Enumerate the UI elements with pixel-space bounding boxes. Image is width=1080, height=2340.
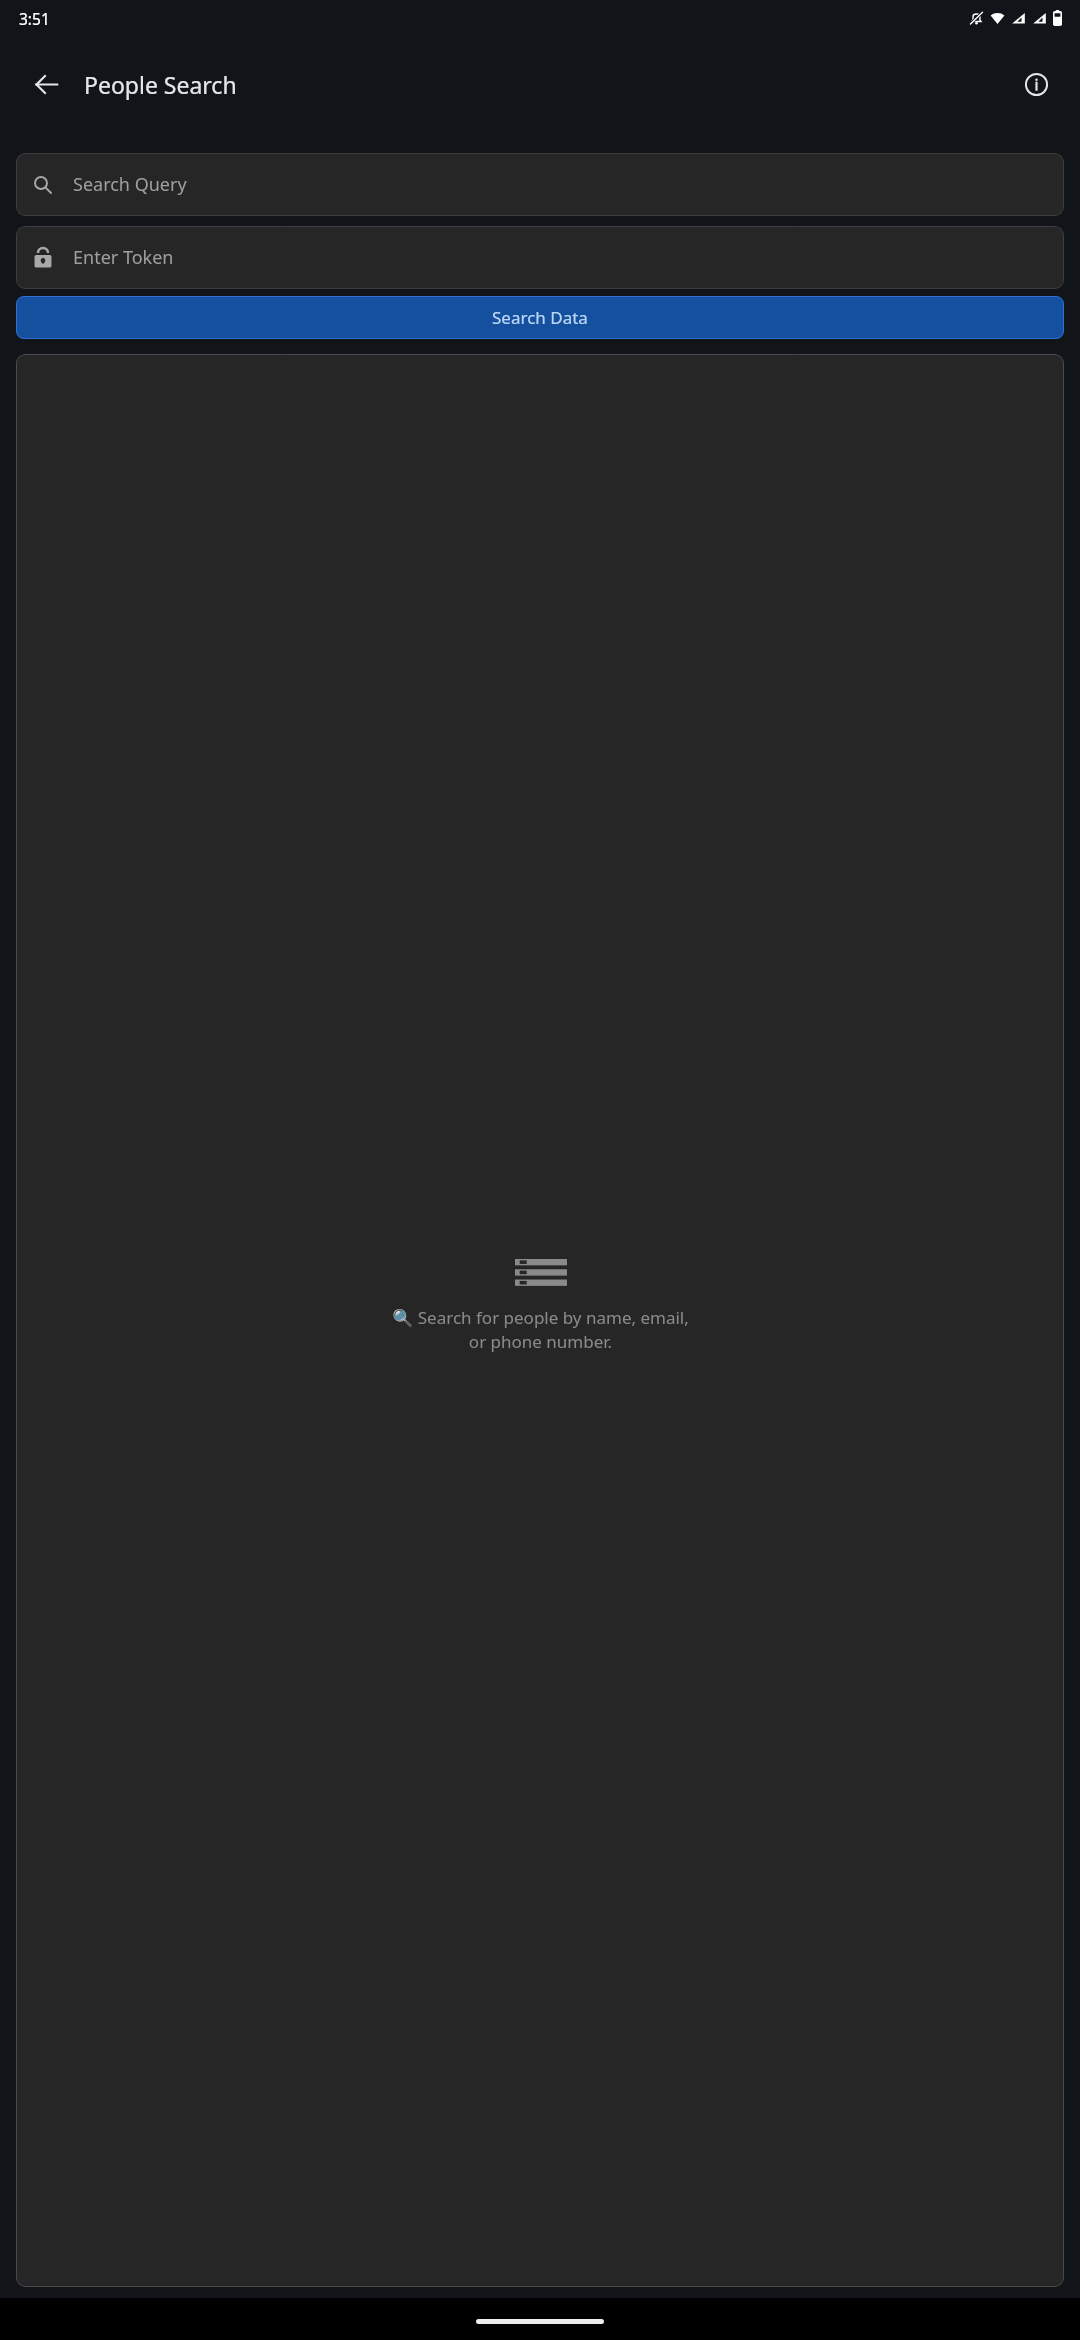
staticText: Search Query bbox=[73, 172, 187, 197]
button[interactable]: Back bbox=[22, 60, 70, 108]
staticText: People Search bbox=[84, 69, 237, 100]
button[interactable]: Enter Token bbox=[16, 226, 1064, 289]
staticText: 🔍 Search for people by name, email, or p… bbox=[392, 1306, 689, 1353]
button[interactable]: Info bbox=[1014, 62, 1058, 106]
staticText: Search Data bbox=[492, 306, 588, 329]
button[interactable]: Search Data bbox=[16, 296, 1064, 339]
button[interactable]: Search Query bbox=[16, 153, 1064, 216]
staticText: Enter Token bbox=[73, 245, 174, 270]
staticText: 3:51 bbox=[19, 8, 50, 29]
